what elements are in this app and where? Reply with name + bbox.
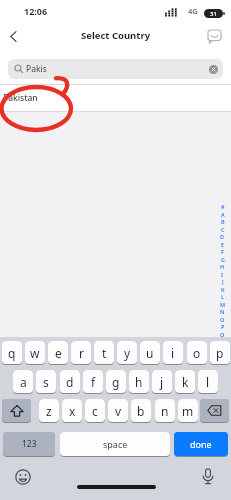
staticText: # xyxy=(221,203,225,210)
staticText: b xyxy=(137,403,145,419)
staticText: D xyxy=(220,233,225,240)
staticText: Pakis xyxy=(26,63,47,75)
staticText: C xyxy=(221,226,225,233)
staticText: Q xyxy=(220,331,225,338)
button[interactable] xyxy=(2,26,24,46)
button[interactable] xyxy=(2,399,31,422)
button[interactable]: Pakis xyxy=(8,59,223,79)
staticText: k xyxy=(182,374,189,390)
staticText: G xyxy=(221,256,225,263)
staticText: Pakistan xyxy=(3,92,38,104)
staticText: y xyxy=(124,345,131,361)
staticText: I xyxy=(221,271,224,278)
button[interactable]: d xyxy=(60,370,80,393)
staticText: done xyxy=(190,438,212,450)
button[interactable]: h xyxy=(129,370,149,393)
staticText: a xyxy=(20,374,27,390)
staticText: g xyxy=(112,374,120,390)
staticText: J xyxy=(222,278,224,285)
button[interactable]: v xyxy=(108,399,128,422)
button[interactable]: w xyxy=(25,341,45,364)
button[interactable]: e xyxy=(48,341,68,364)
button[interactable] xyxy=(205,61,221,77)
button[interactable]: k xyxy=(175,370,195,393)
button[interactable] xyxy=(10,464,36,490)
button[interactable] xyxy=(215,202,231,338)
staticText: Select Country xyxy=(81,29,151,42)
staticText: 12:06 xyxy=(24,5,48,17)
staticText: H xyxy=(220,263,225,270)
staticText: P xyxy=(221,323,225,330)
staticText: 123 xyxy=(22,438,37,450)
button[interactable]: b xyxy=(131,399,151,422)
staticText: p xyxy=(216,345,224,361)
staticText: h xyxy=(135,374,143,390)
staticText: O xyxy=(220,316,225,323)
staticText: c xyxy=(92,403,98,419)
staticText: u xyxy=(146,345,154,361)
button[interactable]: f xyxy=(83,370,103,393)
button[interactable]: u xyxy=(140,341,160,364)
staticText: l xyxy=(206,374,210,390)
button[interactable]: z xyxy=(39,399,59,422)
staticText: 4G xyxy=(188,6,198,16)
staticText: B xyxy=(221,218,225,225)
staticText: v xyxy=(115,403,122,419)
staticText: E xyxy=(221,241,225,248)
staticText: M xyxy=(220,301,226,308)
staticText: 31 xyxy=(210,10,217,18)
button[interactable]: p xyxy=(210,341,230,364)
staticText: x xyxy=(69,403,76,419)
button[interactable]: r xyxy=(71,341,91,364)
staticText: s xyxy=(43,374,49,390)
staticText: K xyxy=(221,286,225,293)
staticText: space xyxy=(103,438,128,450)
button[interactable]: y xyxy=(117,341,137,364)
button[interactable]: Pakistan xyxy=(0,85,231,111)
button[interactable]: space xyxy=(60,432,170,456)
button[interactable]: a xyxy=(13,370,33,393)
button[interactable]: m xyxy=(178,399,198,422)
staticText: q xyxy=(8,345,16,361)
staticText: N xyxy=(220,308,225,315)
staticText: i xyxy=(171,345,175,361)
button[interactable]: g xyxy=(106,370,126,393)
staticText: r xyxy=(79,345,84,361)
button[interactable] xyxy=(200,399,229,422)
staticText: j xyxy=(160,374,164,390)
button[interactable]: i xyxy=(163,341,183,364)
button[interactable]: t xyxy=(94,341,114,364)
button[interactable]: x xyxy=(62,399,82,422)
staticText: o xyxy=(193,345,201,361)
button[interactable]: c xyxy=(85,399,105,422)
button[interactable]: l xyxy=(198,370,218,393)
staticText: t xyxy=(102,345,107,361)
staticText: w xyxy=(30,345,40,361)
staticText: L xyxy=(221,293,225,300)
button[interactable]: 123 xyxy=(3,432,55,456)
button[interactable] xyxy=(202,26,226,46)
button[interactable]: o xyxy=(187,341,207,364)
staticText: A xyxy=(221,211,225,218)
button[interactable]: j xyxy=(152,370,172,393)
staticText: n xyxy=(161,403,169,419)
staticText: d xyxy=(66,374,74,390)
staticText: z xyxy=(46,403,52,419)
button[interactable] xyxy=(195,464,221,490)
staticText: m xyxy=(182,403,194,419)
staticText: F xyxy=(221,248,224,255)
button[interactable]: done xyxy=(174,432,228,456)
button[interactable]: n xyxy=(155,399,175,422)
button[interactable]: s xyxy=(36,370,56,393)
button[interactable]: q xyxy=(2,341,22,364)
staticText: f xyxy=(91,374,96,390)
staticText: e xyxy=(55,345,62,361)
